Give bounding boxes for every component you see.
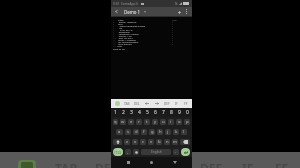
staticText: 1 (172, 37, 174, 39)
staticText: f (143, 129, 145, 135)
staticText: d (135, 129, 138, 135)
button[interactable]: Back (113, 8, 120, 15)
button[interactable]: 6 (151, 108, 159, 117)
button[interactable]: ?123 (113, 148, 123, 156)
staticText: 1 (172, 39, 174, 41)
button[interactable]: DEL (132, 99, 142, 108)
button[interactable]: d (133, 129, 139, 135)
button[interactable]: f (141, 129, 147, 135)
staticText: 7 (113, 31, 115, 33)
staticText: 7 (162, 109, 165, 116)
staticText: endpoints (117, 31, 130, 33)
button[interactable]: 5 (143, 108, 151, 117)
staticText: k (175, 129, 178, 135)
button[interactable]: v (148, 139, 154, 145)
button[interactable]: x (132, 139, 138, 145)
button[interactable]: English (141, 149, 171, 155)
button[interactable]: 2 (119, 108, 127, 117)
staticText: 9 (113, 35, 115, 37)
staticText: DEF (164, 102, 170, 106)
button[interactable]: n (164, 139, 170, 145)
button[interactable]: 7 (159, 108, 167, 117)
staticText: IF (242, 160, 254, 168)
button[interactable]: 0 (183, 108, 191, 117)
button[interactable]: Keyboard settings (18, 160, 36, 168)
button[interactable]: Move left (142, 99, 152, 108)
button[interactable]: Home (146, 157, 157, 168)
staticText: end (117, 23, 123, 25)
button[interactable]: r (136, 119, 142, 125)
staticText: 11 (113, 39, 116, 41)
staticText: Demo 1 (124, 9, 141, 15)
button[interactable]: u (160, 119, 166, 125)
button[interactable]: Recents (123, 157, 134, 168)
staticText: 4 (138, 109, 141, 116)
staticText: arr minutes:indent (117, 41, 139, 43)
button[interactable]: FF (275, 160, 289, 168)
button[interactable]: h (157, 129, 163, 135)
button[interactable]: DEF (162, 99, 172, 108)
button[interactable]: Enter (181, 148, 190, 156)
button[interactable]: 4 (135, 108, 143, 117)
staticText: 1 (172, 43, 174, 45)
button[interactable]: b (156, 139, 162, 145)
button[interactable]: t (144, 119, 150, 125)
button[interactable]: 9 (175, 108, 183, 117)
staticText: w (121, 119, 125, 125)
button[interactable]: Shift (113, 139, 122, 145)
staticText: 1 (113, 19, 115, 21)
button[interactable]: y (152, 119, 158, 125)
staticText: end (117, 45, 122, 47)
button[interactable]: . (173, 149, 179, 155)
button[interactable]: g (149, 129, 155, 135)
button[interactable]: TAB (122, 99, 132, 108)
staticText: English (151, 150, 162, 154)
button[interactable]: TAB (55, 160, 78, 168)
staticText: new (172, 19, 177, 21)
button[interactable]: m (172, 139, 178, 145)
button[interactable]: IF (242, 160, 254, 168)
staticText: , (127, 149, 129, 155)
button[interactable]: 1 (112, 108, 119, 117)
button[interactable]: More options (183, 8, 190, 15)
button[interactable]: e (128, 119, 134, 125)
button[interactable]: Move right (152, 99, 162, 108)
staticText: z (126, 139, 128, 145)
button[interactable]: Language (133, 149, 139, 155)
staticText: 3 (130, 109, 133, 116)
staticText: x (134, 139, 137, 145)
button[interactable]: j (165, 129, 171, 135)
button[interactable]: z (124, 139, 130, 145)
button[interactable]: DEL (95, 160, 118, 168)
staticText: 1 (172, 41, 174, 43)
staticText: 2 (122, 109, 125, 116)
button[interactable]: IF (172, 99, 181, 108)
staticText: p (186, 119, 189, 125)
button[interactable]: i (168, 119, 174, 125)
button[interactable]: Backspace (180, 139, 190, 145)
button[interactable]: s (125, 129, 131, 135)
button[interactable]: FF (181, 99, 190, 108)
staticText: j (167, 129, 169, 135)
button[interactable]: k (173, 129, 179, 135)
staticText: b (158, 139, 161, 145)
staticText: 1 (172, 27, 174, 29)
button[interactable]: , (125, 149, 131, 155)
button[interactable]: 8 (167, 108, 175, 117)
button[interactable]: Keyboard settings (112, 99, 122, 108)
button[interactable]: DEF (200, 160, 223, 168)
staticText: 1 (172, 35, 174, 37)
button[interactable]: Demo 1 (124, 9, 141, 15)
button[interactable]: 3 (127, 108, 135, 117)
button[interactable]: Back (169, 157, 180, 168)
button[interactable]: q (113, 119, 118, 125)
button[interactable]: a (116, 129, 123, 135)
button[interactable]: l (181, 129, 187, 135)
staticText: 6 (154, 109, 157, 116)
button[interactable]: p (184, 119, 190, 125)
button[interactable]: w (120, 119, 126, 125)
button[interactable]: o (176, 119, 182, 125)
button[interactable]: Add (175, 8, 183, 16)
staticText: 5 (146, 109, 149, 116)
button[interactable]: c (140, 139, 146, 145)
